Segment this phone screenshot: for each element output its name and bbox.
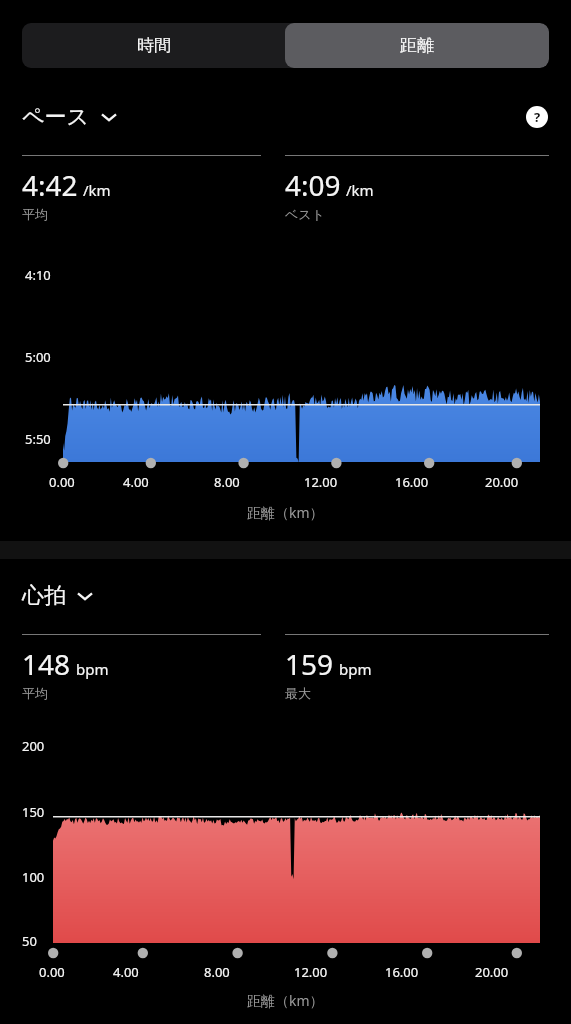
button[interactable]: 時間 bbox=[22, 23, 285, 68]
staticText: bpm bbox=[339, 659, 372, 679]
button[interactable]: 心拍 bbox=[22, 582, 549, 610]
staticText: 4:10 bbox=[25, 266, 51, 284]
button[interactable]: 距離 bbox=[285, 23, 549, 68]
staticText: 平均 bbox=[22, 685, 48, 701]
staticText: 12.00 bbox=[304, 473, 338, 491]
staticText: 20.00 bbox=[475, 963, 509, 981]
staticText: 4.00 bbox=[113, 963, 139, 981]
staticText: 距離 bbox=[400, 35, 434, 56]
staticText: 距離（km） bbox=[247, 503, 324, 522]
staticText: 平均 bbox=[22, 206, 48, 222]
staticText: 距離（km） bbox=[247, 991, 324, 1010]
staticText: 50 bbox=[22, 932, 37, 950]
staticText: 8.00 bbox=[204, 963, 230, 981]
staticText: 0.00 bbox=[39, 963, 65, 981]
staticText: 100 bbox=[22, 868, 45, 886]
staticText: 20.00 bbox=[485, 473, 519, 491]
button[interactable]: Help bbox=[525, 105, 549, 129]
staticText: 最大 bbox=[285, 685, 311, 701]
staticText: /km bbox=[346, 180, 374, 200]
staticText: 時間 bbox=[137, 35, 171, 56]
staticText: ペース bbox=[22, 103, 90, 131]
staticText: 4:42 bbox=[22, 166, 78, 204]
staticText: 16.00 bbox=[385, 963, 419, 981]
button[interactable]: ペース bbox=[22, 103, 120, 131]
staticText: 16.00 bbox=[395, 473, 429, 491]
staticText: 5:50 bbox=[25, 430, 51, 448]
staticText: 4.00 bbox=[123, 473, 149, 491]
staticText: 200 bbox=[22, 737, 45, 755]
staticText: bpm bbox=[76, 659, 109, 679]
staticText: 8.00 bbox=[214, 473, 240, 491]
staticText: /km bbox=[83, 180, 111, 200]
staticText: 148 bbox=[22, 645, 71, 683]
staticText: 5:00 bbox=[25, 348, 51, 366]
staticText: 159 bbox=[285, 645, 334, 683]
staticText: ? bbox=[534, 108, 541, 126]
staticText: 150 bbox=[22, 803, 45, 821]
staticText: 12.00 bbox=[294, 963, 328, 981]
staticText: 0.00 bbox=[49, 473, 75, 491]
staticText: ベスト bbox=[285, 206, 325, 222]
staticText: 4:09 bbox=[285, 166, 341, 204]
staticText: 心拍 bbox=[22, 582, 66, 610]
